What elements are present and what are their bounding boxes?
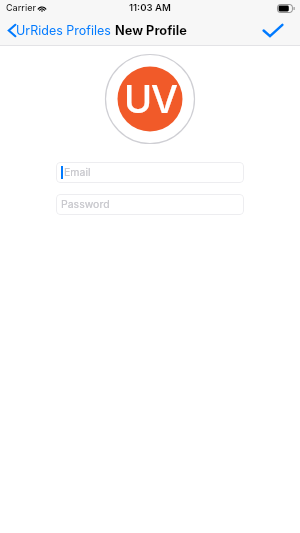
staticText: New Profile — [115, 23, 187, 38]
staticText: UrRides Profiles — [16, 23, 111, 38]
button[interactable]: Password — [56, 194, 244, 215]
button[interactable]: UrRides Profiles — [4, 17, 115, 44]
staticText: UV — [124, 76, 177, 122]
other: Battery — [277, 4, 295, 13]
button[interactable]: Save — [259, 16, 287, 44]
other: Wi-Fi signal — [37, 4, 47, 12]
button[interactable]: Email — [56, 162, 244, 183]
staticText: Password — [61, 198, 110, 211]
staticText: 11:03 AM — [129, 2, 171, 14]
staticText: Email — [64, 166, 91, 179]
staticText: Carrier — [6, 2, 36, 13]
